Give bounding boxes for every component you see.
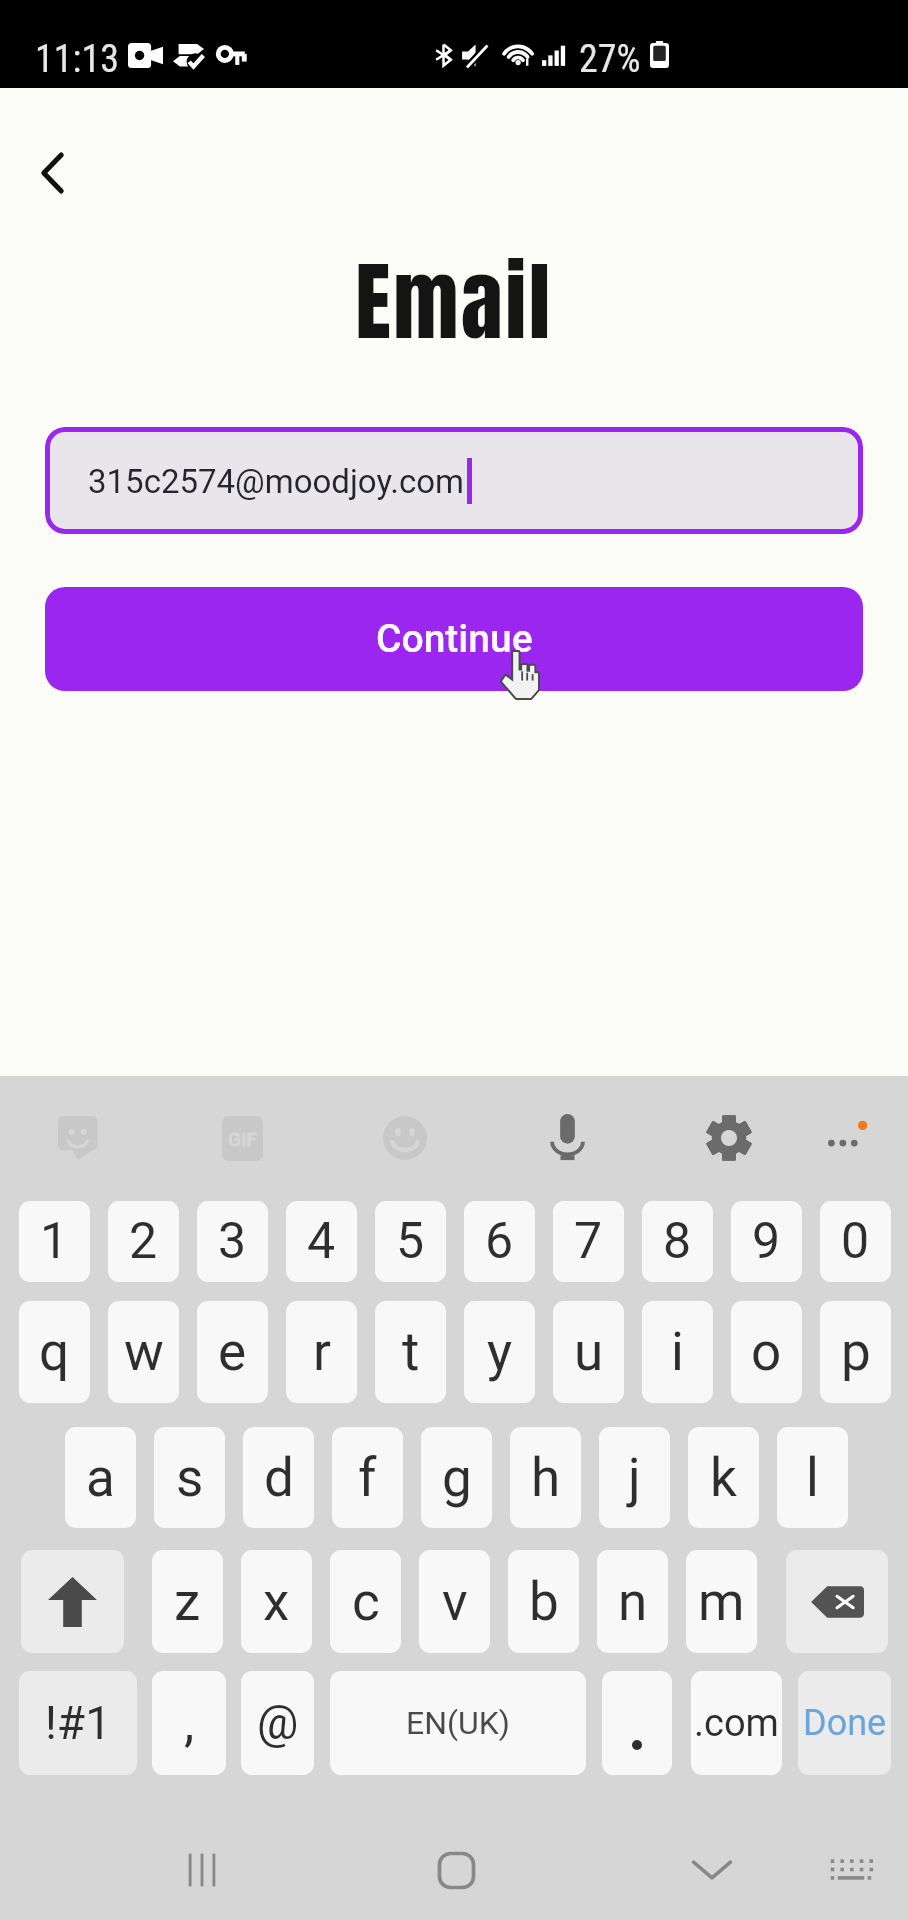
button[interactable]: s (154, 1427, 225, 1528)
button[interactable]: m (686, 1550, 757, 1653)
button[interactable]: t (375, 1301, 446, 1403)
button[interactable]: b (508, 1550, 579, 1653)
staticText: k (710, 1447, 737, 1509)
button[interactable]: e (197, 1301, 268, 1403)
staticText: m (698, 1571, 745, 1633)
button[interactable]: i (642, 1301, 713, 1403)
staticText: q (39, 1321, 70, 1383)
staticText: e (218, 1321, 247, 1383)
staticText: v (442, 1571, 468, 1633)
staticText: 3 (218, 1212, 247, 1271)
button[interactable]: .com (691, 1671, 782, 1775)
button[interactable]: o (731, 1301, 802, 1403)
button[interactable]: More options (797, 1088, 897, 1188)
button[interactable]: 3 (197, 1201, 268, 1282)
staticText: s (176, 1447, 204, 1509)
button[interactable]: GIF (192, 1088, 292, 1188)
button[interactable]: a (65, 1427, 136, 1528)
staticText: z (174, 1571, 201, 1633)
button[interactable]: 8 (642, 1201, 713, 1282)
button[interactable]: Recents (147, 1820, 257, 1920)
button[interactable] (602, 1671, 672, 1775)
staticText: f (358, 1447, 377, 1509)
staticText: j (628, 1447, 641, 1509)
button[interactable]: 5 (375, 1201, 446, 1282)
staticText: Done (803, 1702, 887, 1744)
button[interactable]: n (597, 1550, 668, 1653)
staticText: 27% (579, 37, 641, 82)
button[interactable]: v (419, 1550, 490, 1653)
staticText: t (402, 1321, 420, 1383)
button[interactable]: EN(UK) (330, 1671, 586, 1775)
button[interactable]: Emoji (355, 1088, 455, 1188)
button[interactable]: g (421, 1427, 492, 1528)
staticText: 4 (307, 1212, 336, 1271)
staticText: 315c2574@moodjoy.com (88, 462, 465, 501)
staticText: Email (0, 237, 908, 366)
staticText: .com (694, 1701, 779, 1746)
button[interactable]: Done (798, 1671, 891, 1775)
button[interactable]: f (332, 1427, 403, 1528)
staticText: @ (257, 1696, 299, 1750)
button[interactable]: l (777, 1427, 848, 1528)
button[interactable]: c (330, 1550, 401, 1653)
button[interactable]: 0 (820, 1201, 891, 1282)
button[interactable]: 4 (286, 1201, 357, 1282)
button[interactable]: Keyboard settings (679, 1088, 779, 1188)
staticText: GIF (228, 1128, 257, 1150)
staticText: !#1 (45, 1696, 112, 1750)
button[interactable]: Backspace (786, 1550, 888, 1653)
button[interactable]: Back (12, 133, 92, 213)
staticText: g (442, 1447, 472, 1509)
button[interactable]: , (152, 1671, 226, 1775)
button[interactable]: 9 (731, 1201, 802, 1282)
staticText: u (574, 1321, 604, 1383)
button[interactable]: q (19, 1301, 90, 1403)
button[interactable]: Hide keyboard (657, 1820, 767, 1920)
button[interactable]: 315c2574@moodjoy.com (45, 427, 863, 534)
staticText: 2 (129, 1212, 158, 1271)
staticText: l (806, 1447, 819, 1509)
button[interactable]: x (241, 1550, 312, 1653)
button[interactable]: j (599, 1427, 670, 1528)
staticText: i (671, 1321, 684, 1383)
button[interactable]: Voice input (517, 1088, 617, 1188)
staticText: Continue (376, 616, 533, 662)
button[interactable]: Shift (21, 1550, 124, 1653)
button[interactable]: h (510, 1427, 581, 1528)
staticText: c (352, 1571, 380, 1633)
button[interactable]: z (152, 1550, 223, 1653)
button[interactable]: w (108, 1301, 179, 1403)
button[interactable]: r (286, 1301, 357, 1403)
staticText: 11:13 (35, 37, 119, 82)
staticText: n (618, 1571, 648, 1633)
staticText: d (264, 1447, 294, 1509)
button[interactable]: Switch keyboard (796, 1820, 906, 1920)
button[interactable]: Home (401, 1820, 511, 1920)
button[interactable]: 2 (108, 1201, 179, 1282)
staticText: r (313, 1321, 331, 1383)
button[interactable]: k (688, 1427, 759, 1528)
button[interactable]: !#1 (19, 1671, 137, 1775)
staticText: 7 (574, 1212, 603, 1271)
staticText: 5 (396, 1212, 425, 1271)
staticText: 8 (663, 1212, 692, 1271)
staticText: x (263, 1571, 290, 1633)
button[interactable]: p (820, 1301, 891, 1403)
staticText: b (529, 1571, 559, 1633)
button[interactable]: 7 (553, 1201, 624, 1282)
staticText: 6 (485, 1212, 514, 1271)
button[interactable]: y (464, 1301, 535, 1403)
staticText: a (86, 1447, 115, 1509)
button[interactable]: 1 (19, 1201, 90, 1282)
staticText: 0 (841, 1212, 870, 1271)
button[interactable]: u (553, 1301, 624, 1403)
button[interactable]: Continue (45, 587, 863, 691)
button[interactable]: @ (241, 1671, 314, 1775)
button[interactable]: 6 (464, 1201, 535, 1282)
button[interactable]: Stickers (30, 1088, 130, 1188)
staticText: , (184, 1693, 195, 1754)
staticText: y (487, 1321, 513, 1383)
staticText: w (124, 1321, 164, 1383)
button[interactable]: d (243, 1427, 314, 1528)
